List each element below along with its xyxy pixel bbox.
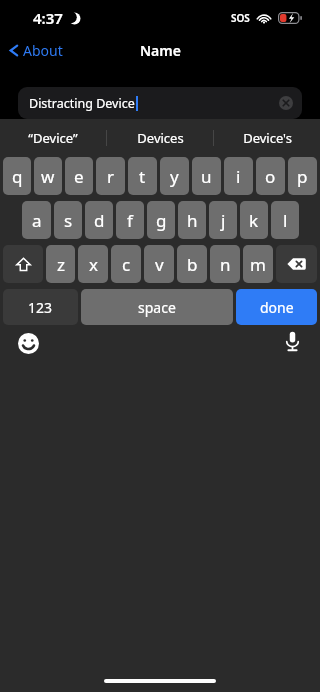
staticText: k <box>249 209 259 232</box>
button[interactable]: m <box>243 245 273 283</box>
button[interactable]: i <box>224 157 253 195</box>
staticText: x <box>89 253 98 276</box>
staticText: t <box>139 165 146 188</box>
staticText: q <box>12 165 23 188</box>
staticText: c <box>122 253 131 276</box>
staticText: d <box>94 209 105 232</box>
staticText: Distracting Device <box>29 95 135 112</box>
staticText: y <box>170 165 179 188</box>
staticText: a <box>32 209 42 232</box>
button[interactable]: Emoji <box>16 331 41 356</box>
button[interactable]: a <box>22 201 51 239</box>
button[interactable]: r <box>96 157 125 195</box>
staticText: n <box>220 253 231 276</box>
staticText: g <box>156 209 167 232</box>
button[interactable]: j <box>209 201 237 239</box>
button[interactable]: z <box>46 245 75 283</box>
staticText: w <box>41 165 55 188</box>
staticText: r <box>107 165 115 188</box>
staticText: u <box>201 165 212 188</box>
staticText: f <box>127 209 133 232</box>
button[interactable]: k <box>240 201 268 239</box>
staticText: b <box>187 253 198 276</box>
button[interactable]: u <box>192 157 221 195</box>
button[interactable]: Devices <box>107 119 213 157</box>
button[interactable]: About <box>0 37 73 64</box>
button[interactable]: f <box>116 201 144 239</box>
button[interactable]: 123 <box>3 289 78 325</box>
staticText: 123 <box>28 298 53 317</box>
button[interactable]: “Device” <box>0 119 106 157</box>
button[interactable]: c <box>111 245 141 283</box>
staticText: “Device” <box>28 129 78 147</box>
button[interactable]: n <box>210 245 240 283</box>
button[interactable]: Clear text <box>279 96 293 110</box>
button[interactable]: o <box>256 157 285 195</box>
staticText: Name <box>140 41 181 60</box>
staticText: space <box>138 298 176 317</box>
button[interactable]: Distracting Device <box>18 87 302 119</box>
staticText: SOS <box>231 11 250 25</box>
button[interactable]: Device's <box>214 119 320 157</box>
staticText: e <box>74 165 84 188</box>
button[interactable]: space <box>81 289 233 325</box>
staticText: p <box>297 165 308 188</box>
staticText: done <box>260 298 294 317</box>
staticText: j <box>221 209 226 232</box>
staticText: Devices <box>137 129 184 147</box>
button[interactable]: y <box>160 157 189 195</box>
button[interactable]: h <box>178 201 206 239</box>
button[interactable]: e <box>65 157 93 195</box>
staticText: s <box>64 209 73 232</box>
button[interactable]: b <box>177 245 207 283</box>
button[interactable]: d <box>85 201 113 239</box>
staticText: i <box>236 165 241 188</box>
button[interactable]: Shift <box>3 245 43 283</box>
staticText: o <box>265 165 276 188</box>
staticText: h <box>187 209 198 232</box>
button[interactable]: s <box>54 201 82 239</box>
button[interactable]: v <box>144 245 174 283</box>
button[interactable]: p <box>288 157 317 195</box>
button[interactable]: w <box>34 157 62 195</box>
button[interactable]: x <box>78 245 108 283</box>
staticText: l <box>283 209 288 232</box>
button[interactable]: Backspace <box>276 245 317 283</box>
staticText: z <box>57 253 65 276</box>
button[interactable]: Dictation <box>281 330 304 353</box>
button[interactable]: q <box>3 157 31 195</box>
staticText: 4:37 <box>33 8 63 28</box>
staticText: v <box>155 253 164 276</box>
button[interactable]: done <box>236 289 317 325</box>
staticText: m <box>250 253 266 276</box>
staticText: Device's <box>243 129 292 147</box>
button[interactable]: t <box>128 157 157 195</box>
button[interactable]: l <box>271 201 299 239</box>
button[interactable]: g <box>147 201 175 239</box>
staticText: About <box>23 41 63 60</box>
